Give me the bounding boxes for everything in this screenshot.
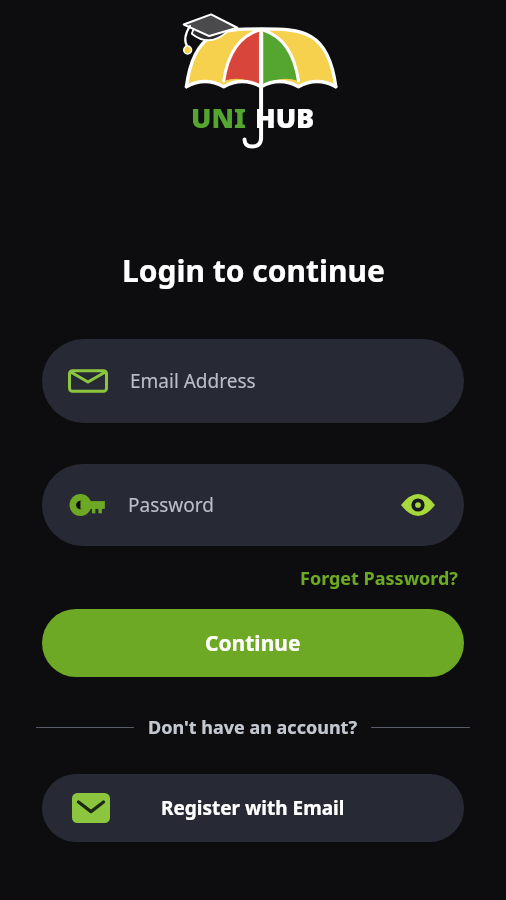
button[interactable]: Password <box>42 464 464 546</box>
button[interactable]: Email Address <box>42 339 464 423</box>
button[interactable]: Show password <box>398 485 438 525</box>
staticText: HUB <box>255 99 315 136</box>
staticText: Don't have an account? <box>148 715 357 740</box>
button[interactable]: Continue <box>42 609 464 677</box>
button[interactable]: Register with Email <box>42 774 464 842</box>
staticText: Continue <box>205 629 301 658</box>
button[interactable]: Forget Password? <box>296 562 462 595</box>
staticText: Register with Email <box>161 795 345 821</box>
staticText: Login to continue <box>122 250 385 291</box>
staticText: Email Address <box>130 368 256 394</box>
staticText: Forget Password? <box>300 566 458 591</box>
staticText: Password <box>128 492 398 518</box>
staticText: UNI <box>191 99 246 136</box>
